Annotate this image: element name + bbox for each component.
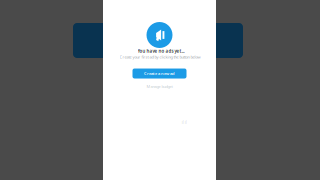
staticText: ıl ıl (181, 118, 186, 126)
staticText: Create a new ad (144, 71, 175, 76)
staticText: You have no ads yet... (137, 48, 184, 54)
staticText: Create your first ad by clicking the but… (119, 54, 200, 60)
button[interactable]: Create a new ad (132, 68, 186, 78)
staticText: Manage budget (146, 84, 172, 89)
button[interactable]: Manage budget (146, 84, 172, 89)
